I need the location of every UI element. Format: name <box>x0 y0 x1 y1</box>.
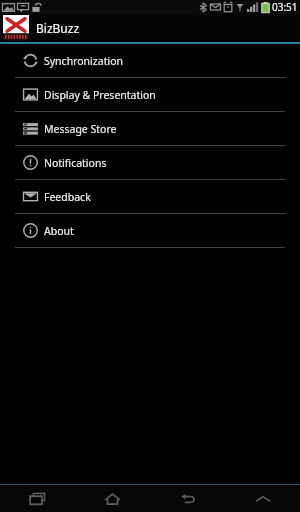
staticText: Display & Presentation <box>44 88 156 102</box>
staticText: 03:51 <box>272 0 298 14</box>
staticText: BizBuzz <box>36 20 80 36</box>
button[interactable]: Recent apps <box>0 485 75 512</box>
button[interactable]: About <box>0 214 300 247</box>
button[interactable]: Display & Presentation <box>0 78 300 111</box>
button[interactable]: Feedback <box>0 180 300 213</box>
staticText: Synchronization <box>44 54 123 68</box>
staticText: About <box>44 224 74 238</box>
staticText: Message Store <box>44 122 117 136</box>
button[interactable]: Hide navigation bar <box>225 485 300 512</box>
button[interactable]: Back <box>150 485 225 512</box>
button[interactable]: Synchronization <box>0 44 300 77</box>
staticText: Notifications <box>44 156 107 170</box>
button[interactable]: Home <box>75 485 150 512</box>
button[interactable]: Notifications <box>0 146 300 179</box>
staticText: Feedback <box>44 190 91 204</box>
button[interactable]: Message Store <box>0 112 300 145</box>
